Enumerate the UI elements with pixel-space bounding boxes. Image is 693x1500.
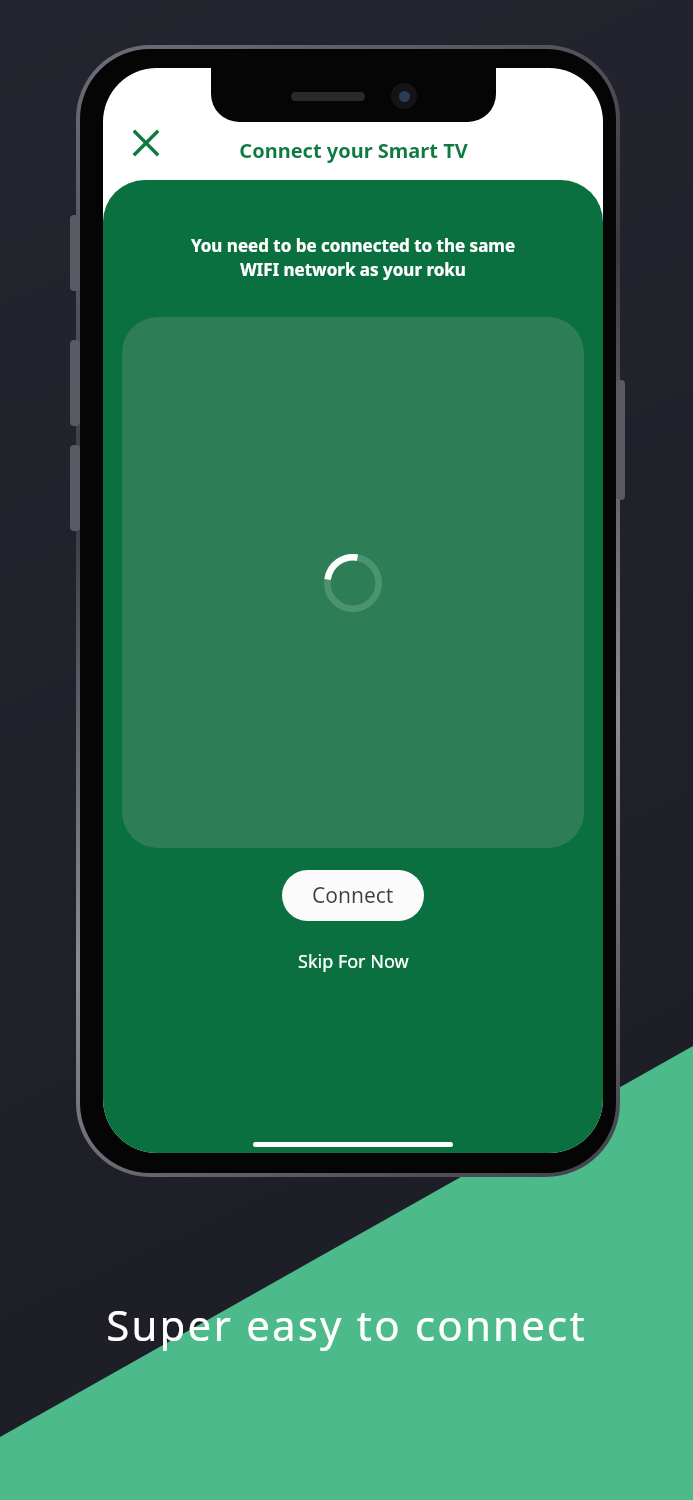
button[interactable]: Connect	[282, 870, 424, 921]
button[interactable]: Skip For Now	[282, 943, 425, 980]
staticText: Skip For Now	[298, 949, 409, 974]
staticText: Connect your Smart TV	[239, 137, 468, 164]
staticText: Super easy to connect	[0, 1296, 693, 1353]
button[interactable]: Close	[123, 120, 169, 166]
staticText: You need to be connected to the same WIF…	[117, 234, 589, 281]
staticText: Connect	[312, 881, 394, 910]
